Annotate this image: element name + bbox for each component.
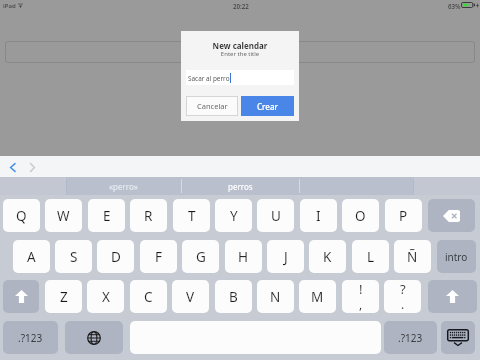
staticText: Sacar al perro [188, 74, 230, 83]
staticText: Y [230, 207, 238, 225]
staticText: W [57, 207, 70, 225]
button[interactable]: intro [437, 240, 476, 273]
staticText: O [355, 207, 366, 225]
staticText: Enter the title [181, 50, 299, 58]
staticText: ! [359, 280, 363, 298]
button[interactable]: Y [215, 199, 252, 232]
staticText: X [102, 288, 110, 306]
button[interactable]: Cancelar [186, 96, 238, 116]
button[interactable]: B [215, 280, 252, 313]
button[interactable]: N [257, 280, 294, 313]
staticText: G [196, 248, 206, 266]
staticText: N [270, 288, 281, 306]
button[interactable]: D [97, 240, 134, 273]
staticText: New calendar [181, 40, 299, 51]
button[interactable]: G [182, 240, 219, 273]
button[interactable]: ? [384, 280, 421, 313]
button[interactable]: P [385, 199, 422, 232]
button[interactable]: M [299, 280, 336, 313]
staticText: perros [228, 181, 253, 192]
button[interactable]: L [352, 240, 389, 273]
staticText: iPad [3, 2, 16, 10]
staticText: «perro» [109, 181, 138, 192]
staticText: Q [16, 207, 27, 225]
button[interactable]: S [55, 240, 92, 273]
button[interactable]: Change keyboard [65, 321, 123, 354]
button[interactable]: Z [45, 280, 82, 313]
staticText: V [186, 288, 195, 306]
staticText: E [103, 207, 111, 225]
staticText: B [229, 288, 238, 306]
button[interactable]: .?123 [3, 321, 58, 354]
button[interactable]: I [300, 199, 337, 232]
staticText: , [359, 296, 363, 311]
staticText: ? [400, 280, 406, 298]
button[interactable]: K [309, 240, 346, 273]
button[interactable]: Ñ [394, 240, 431, 273]
staticText: F [155, 248, 163, 266]
button[interactable]: Crear [241, 96, 294, 116]
staticText: P [399, 207, 408, 225]
button[interactable]: E [88, 199, 125, 232]
button[interactable]: .?123 [384, 321, 437, 354]
button[interactable]: perros [181, 177, 299, 195]
staticText: D [111, 248, 121, 266]
staticText: . [401, 296, 405, 311]
staticText: M [311, 288, 324, 306]
button[interactable]: O [342, 199, 379, 232]
staticText: .?123 [398, 331, 423, 345]
staticText: C [144, 288, 153, 306]
button[interactable]: Backspace [428, 199, 475, 232]
button[interactable]: F [140, 240, 177, 273]
button[interactable]: Previous field [5, 160, 19, 174]
staticText: Ñ [407, 248, 418, 266]
button[interactable]: A [13, 240, 50, 273]
button[interactable]: X [87, 280, 124, 313]
staticText: U [271, 207, 281, 225]
staticText: 63% [448, 2, 461, 10]
staticText: L [367, 248, 375, 266]
button[interactable]: Q [3, 199, 40, 232]
button[interactable]: Hide keyboard [441, 321, 475, 354]
staticText: J [284, 248, 288, 266]
staticText: Crear [257, 101, 278, 112]
staticText: R [144, 207, 153, 225]
staticText: 20:22 [233, 2, 249, 10]
staticText: A [27, 248, 36, 266]
staticText: H [238, 248, 249, 266]
staticText: S [70, 248, 78, 266]
button[interactable]: C [130, 280, 167, 313]
button[interactable]: Sacar al perro [186, 70, 294, 85]
button[interactable]: J [267, 240, 304, 273]
button[interactable]: W [45, 199, 82, 232]
button[interactable]: U [257, 199, 294, 232]
staticText: intro [445, 250, 468, 264]
button[interactable]: Next field [25, 160, 39, 174]
staticText: Z [60, 288, 68, 306]
staticText: K [323, 248, 332, 266]
staticText: T [188, 207, 196, 225]
button[interactable]: T [173, 199, 210, 232]
staticText: .?123 [18, 331, 43, 345]
button[interactable]: «perro» [66, 177, 181, 195]
staticText: Cancelar [197, 101, 228, 111]
button[interactable]: Shift [3, 280, 39, 313]
staticText: I [316, 207, 321, 225]
button[interactable]: H [225, 240, 262, 273]
button[interactable]: Shift [428, 280, 477, 313]
button[interactable]: R [130, 199, 167, 232]
button[interactable]: V [172, 280, 209, 313]
button[interactable]: ! [342, 280, 379, 313]
